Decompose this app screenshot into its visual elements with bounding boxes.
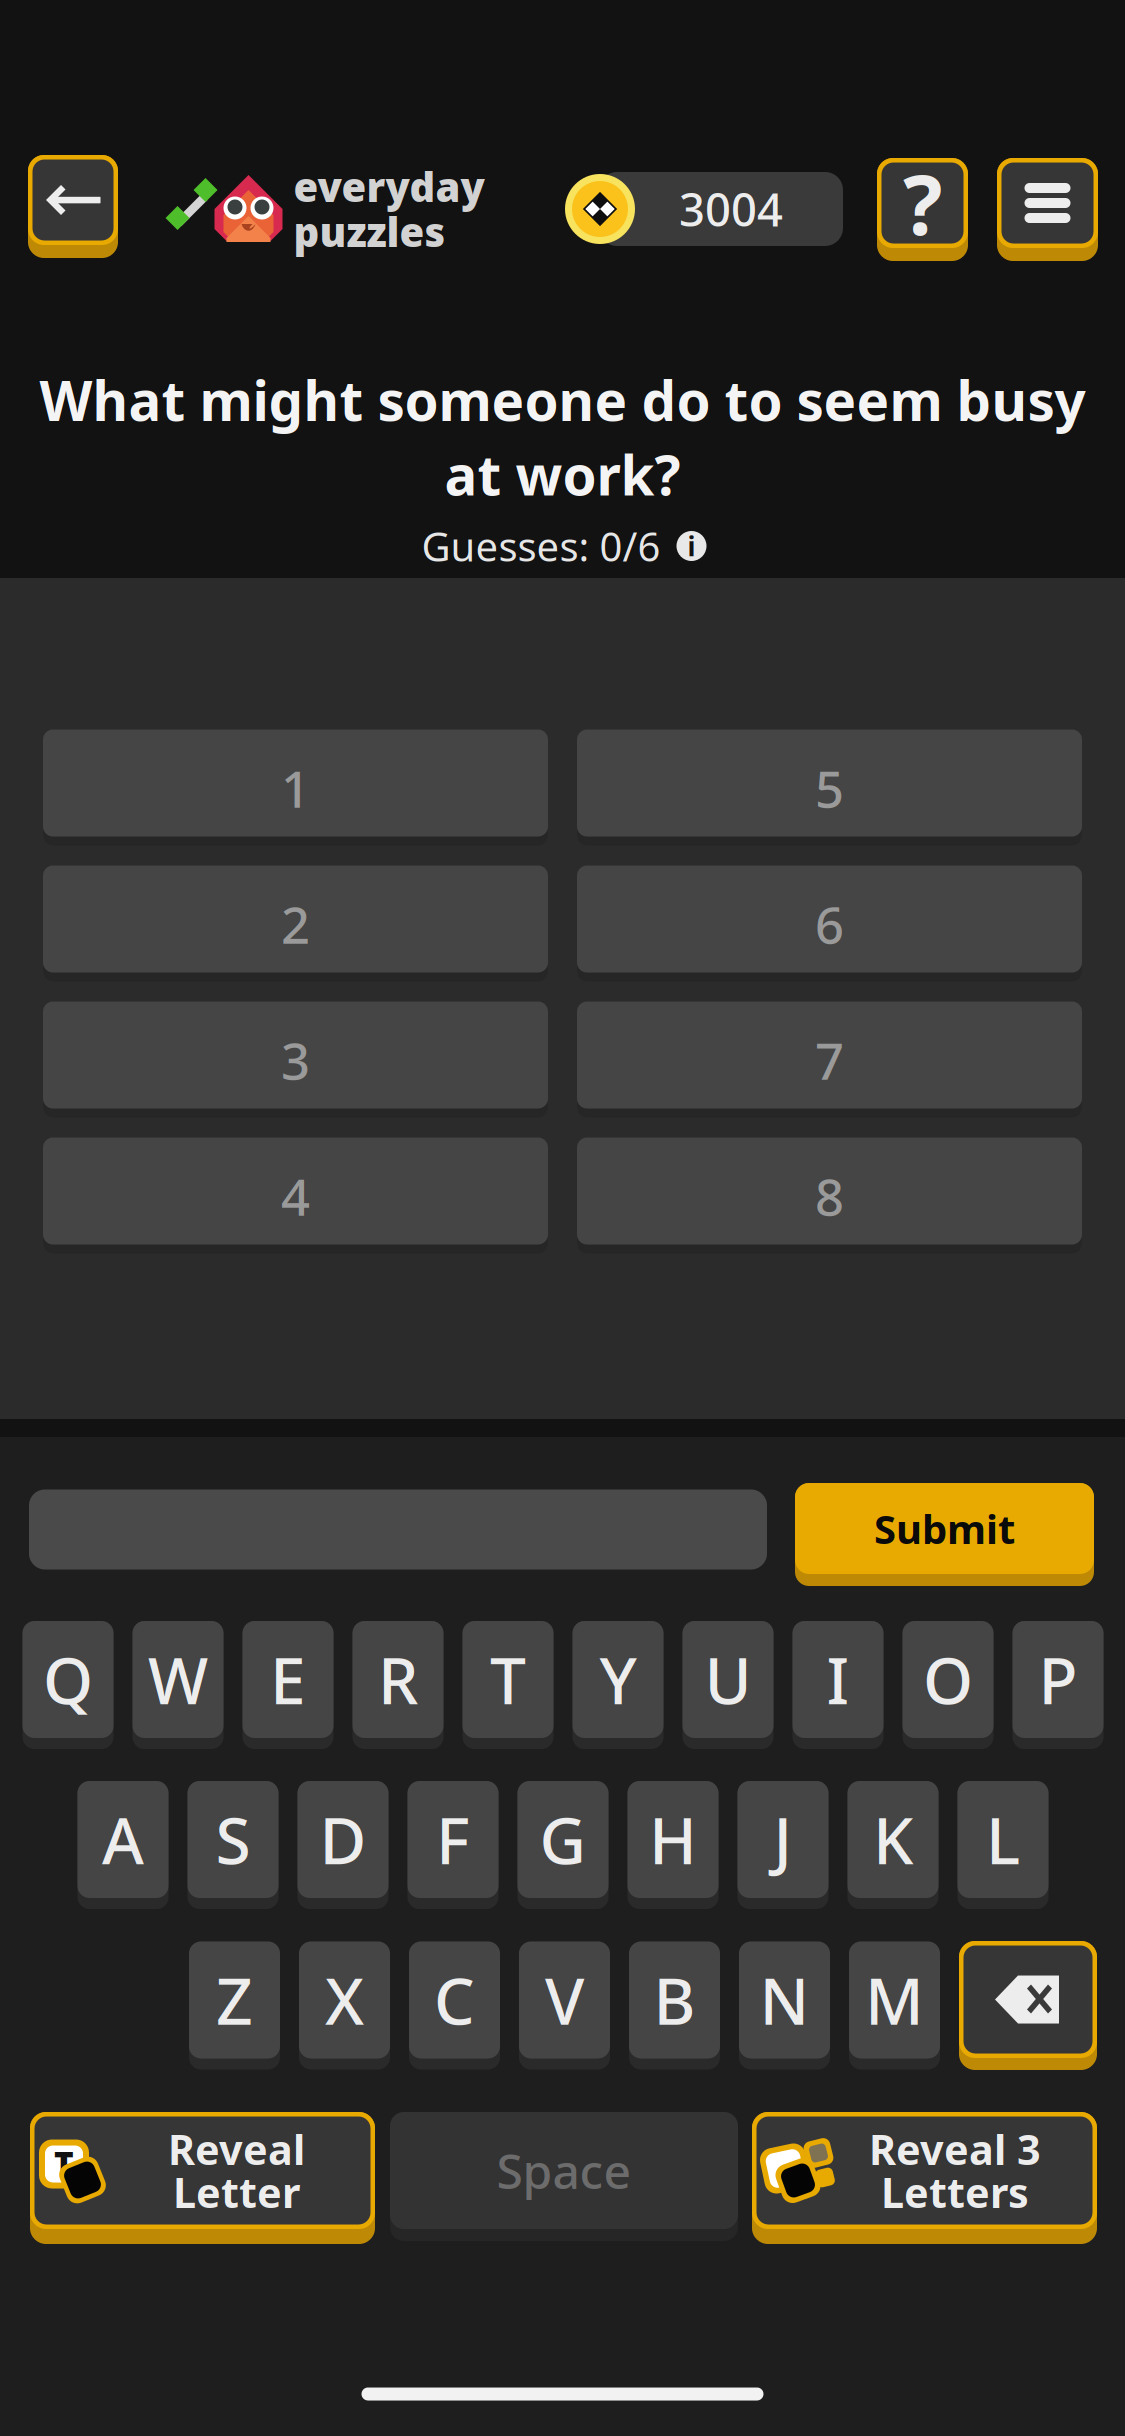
button[interactable]: Z: [189, 1941, 280, 2069]
staticText: Space: [496, 2139, 631, 2202]
staticText: W: [148, 1637, 208, 1722]
staticText: T: [54, 2141, 74, 2185]
button[interactable]: L: [957, 1781, 1048, 1909]
staticText: K: [873, 1797, 913, 1882]
staticText: Z: [216, 1957, 253, 2042]
staticText: O: [923, 1637, 973, 1722]
button[interactable]: F: [407, 1781, 498, 1909]
staticText: V: [545, 1957, 584, 2042]
staticText: H: [649, 1797, 697, 1882]
staticText: X: [325, 1957, 364, 2042]
button[interactable]: P: [1012, 1621, 1103, 1749]
button[interactable]: J: [737, 1781, 828, 1909]
staticText: 1: [281, 754, 310, 822]
staticText: 7: [815, 1026, 844, 1094]
staticText: Q: [43, 1637, 93, 1722]
button[interactable]: 3: [43, 1001, 548, 1117]
staticText: 2: [281, 890, 310, 958]
button[interactable]: Back: [28, 155, 118, 258]
button[interactable]: 3004: [565, 170, 843, 248]
staticText: 4: [281, 1162, 310, 1230]
button[interactable]: 1: [43, 729, 548, 845]
button[interactable]: H: [627, 1781, 718, 1909]
staticText: i: [687, 528, 695, 564]
button[interactable]: 7: [577, 1001, 1082, 1117]
staticText: Guesses: 0/6: [421, 519, 660, 572]
button[interactable]: Menu: [997, 158, 1098, 261]
staticText: everyday: [293, 160, 484, 213]
button[interactable]: T: [30, 2112, 375, 2244]
button[interactable]: N: [739, 1941, 830, 2069]
button[interactable]: U: [682, 1621, 773, 1749]
button[interactable]: X: [299, 1941, 390, 2069]
button[interactable]: K: [847, 1781, 938, 1909]
button[interactable]: Submit: [795, 1483, 1094, 1586]
staticText: C: [434, 1957, 475, 2042]
button[interactable]: R: [352, 1621, 443, 1749]
staticText: N: [759, 1957, 809, 2042]
button[interactable]: B: [629, 1941, 720, 2069]
button[interactable]: Y: [572, 1621, 663, 1749]
button[interactable]: Delete: [959, 1941, 1097, 2070]
staticText: Letter: [173, 2164, 300, 2219]
staticText: U: [704, 1637, 751, 1722]
staticText: puzzles: [293, 205, 445, 258]
staticText: D: [319, 1797, 366, 1882]
staticText: J: [773, 1797, 792, 1882]
staticText: S: [215, 1797, 250, 1882]
staticText: G: [539, 1797, 586, 1882]
staticText: at work?: [444, 438, 680, 511]
staticText: B: [653, 1957, 695, 2042]
staticText: M: [865, 1957, 924, 2042]
button[interactable]: 2: [43, 865, 548, 981]
staticText: F: [436, 1797, 470, 1882]
staticText: Submit: [874, 1502, 1015, 1555]
staticText: Y: [599, 1637, 636, 1722]
staticText: L: [986, 1797, 1020, 1882]
staticText: Reveal 3: [869, 2122, 1041, 2176]
button[interactable]: 4: [43, 1137, 548, 1253]
staticText: 6: [815, 890, 844, 958]
staticText: ?: [903, 148, 942, 258]
staticText: E: [270, 1637, 306, 1722]
button[interactable]: Help: [877, 158, 968, 261]
staticText: 3: [281, 1026, 310, 1094]
button[interactable]: 8: [577, 1137, 1082, 1253]
staticText: R: [378, 1637, 418, 1722]
button[interactable]: O: [902, 1621, 993, 1749]
staticText: I: [826, 1637, 849, 1722]
button[interactable]: 5: [577, 729, 1082, 845]
button[interactable]: W: [132, 1621, 223, 1749]
button[interactable]: 6: [577, 865, 1082, 981]
button[interactable]: T: [462, 1621, 553, 1749]
button[interactable]: S: [187, 1781, 278, 1909]
button[interactable]: V: [519, 1941, 610, 2069]
staticText: 8: [815, 1162, 844, 1230]
staticText: Reveal: [168, 2122, 305, 2176]
button[interactable]: E: [242, 1621, 333, 1749]
staticText: What might someone do to seem busy: [39, 363, 1085, 436]
staticText: T: [490, 1637, 526, 1722]
staticText: 3004: [679, 179, 783, 239]
button[interactable]: Space: [390, 2112, 738, 2241]
button[interactable]: A: [77, 1781, 168, 1909]
staticText: Letters: [881, 2164, 1029, 2219]
button[interactable]: G: [517, 1781, 608, 1909]
button[interactable]: Reveal 3: [752, 2112, 1097, 2244]
button[interactable]: I: [792, 1621, 883, 1749]
staticText: A: [102, 1797, 144, 1882]
staticText: P: [1038, 1637, 1077, 1722]
button[interactable]: Q: [22, 1621, 113, 1749]
staticText: 5: [815, 754, 844, 822]
button[interactable]: M: [849, 1941, 940, 2069]
button[interactable]: C: [409, 1941, 500, 2069]
button[interactable]: D: [297, 1781, 388, 1909]
